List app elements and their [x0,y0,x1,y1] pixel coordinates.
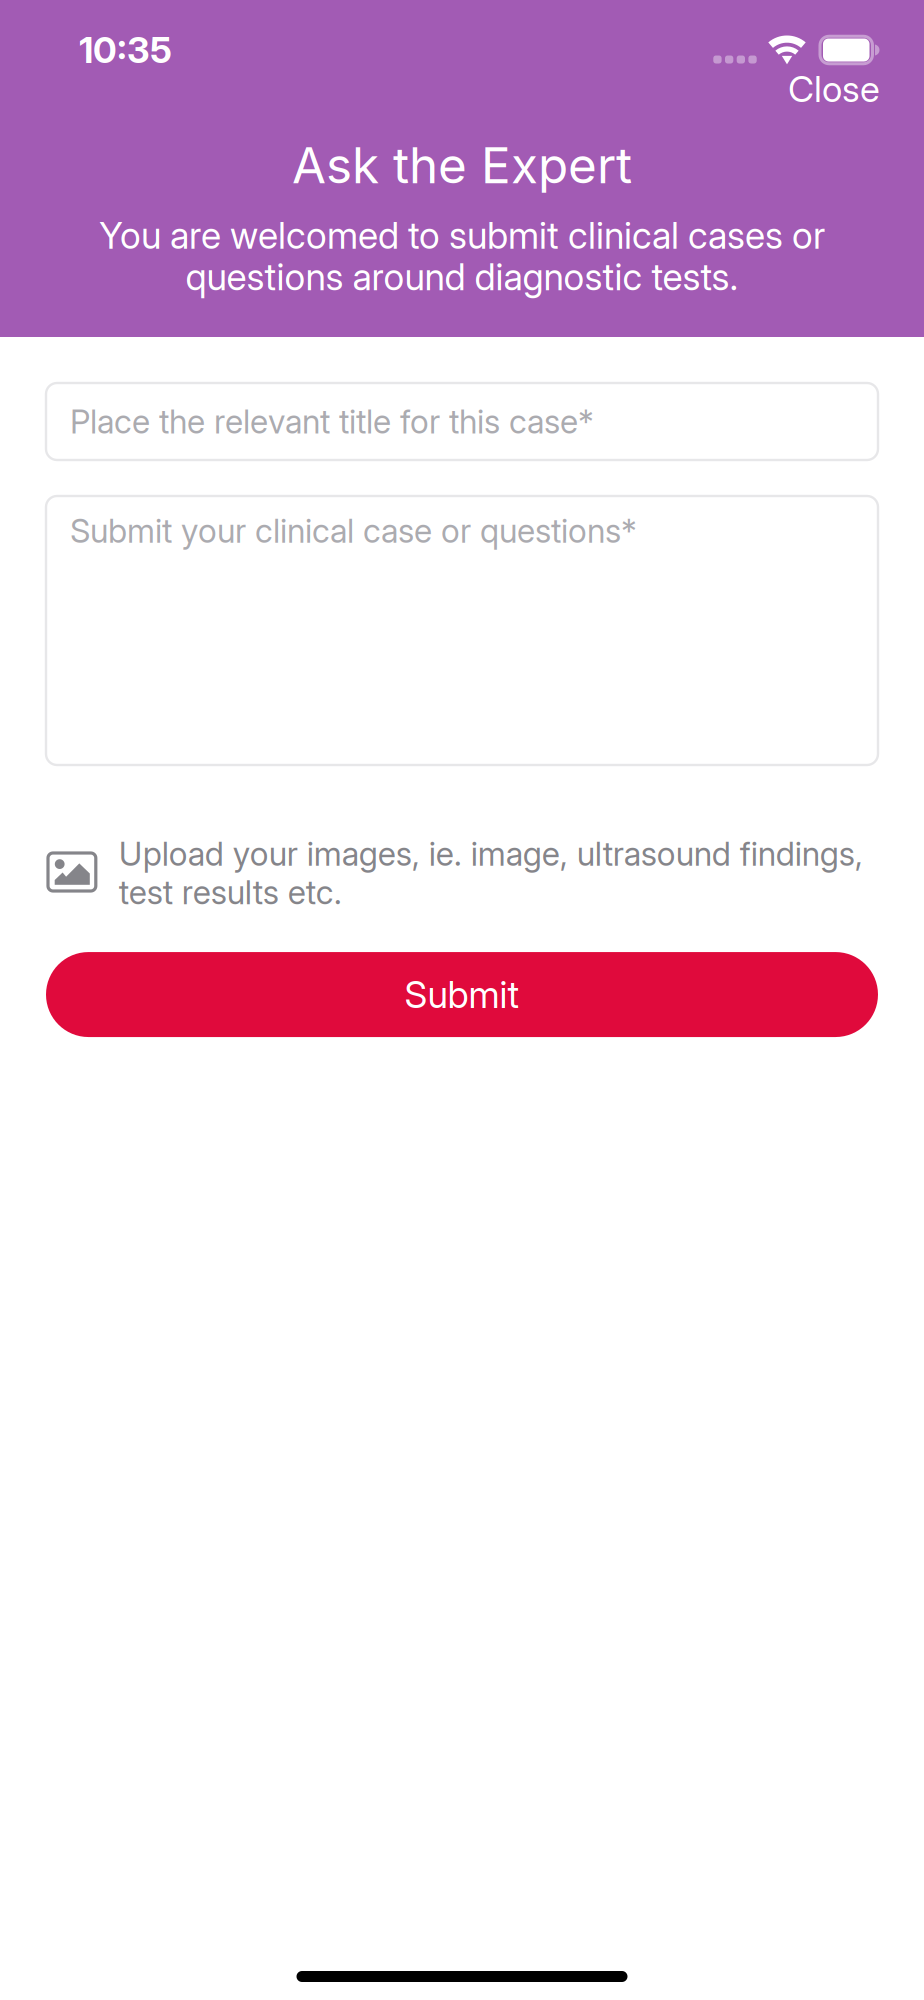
staticText: test results etc. [119,872,342,912]
button[interactable]: Close [776,61,892,117]
staticText: 10:35 [79,28,172,72]
staticText: You are welcomed to submit clinical case… [99,213,825,258]
button[interactable]: Submit [46,952,878,1037]
staticText: Place the relevant title for this case* [70,402,594,441]
button[interactable]: Upload your images, ie. image, ultrasoun… [46,834,878,912]
staticText: Submit your clinical case or questions* [70,511,637,550]
staticText: questions around diagnostic tests. [185,255,738,299]
button[interactable]: Place the relevant title for this case* [46,383,878,460]
staticText: Ask the Expert [292,136,632,195]
button[interactable]: Submit your clinical case or questions* [46,496,878,765]
staticText: Close [788,67,880,111]
staticText: Submit [404,972,519,1017]
staticText: Upload your images, ie. image, ultrasoun… [119,834,863,873]
